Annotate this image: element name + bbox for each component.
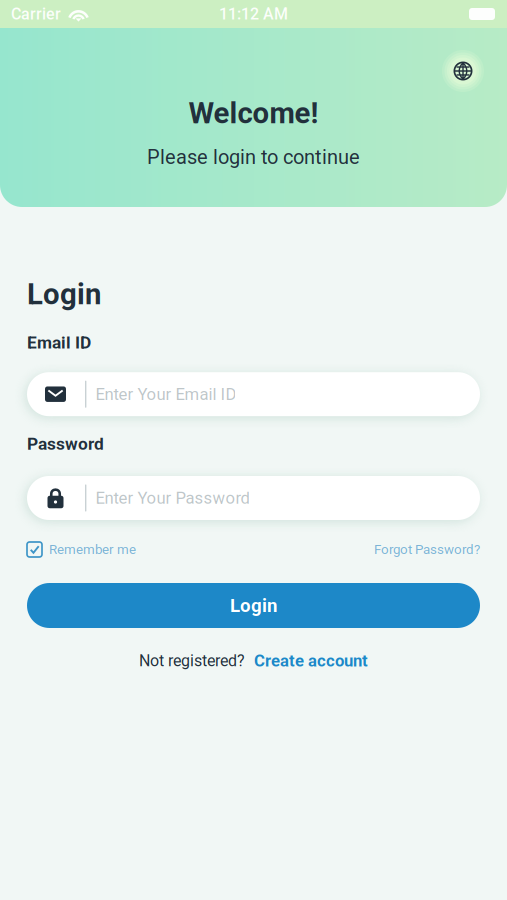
staticText: Create account: [254, 651, 368, 670]
staticText: Login: [230, 595, 277, 616]
staticText: Remember me: [49, 542, 136, 557]
button[interactable]: Remember me: [27, 540, 136, 558]
button[interactable]: Login: [27, 583, 480, 628]
staticText: Login: [27, 277, 101, 311]
staticText: 11:12 AM: [219, 5, 288, 23]
staticText: Please login to continue: [147, 145, 360, 169]
staticText: Not registered?: [139, 651, 245, 670]
staticText: Carrier: [11, 5, 61, 23]
staticText: Enter Your Email ID: [95, 384, 236, 404]
staticText: Email ID: [27, 332, 91, 353]
staticText: Enter Your Password: [95, 488, 249, 508]
staticText: Forgot Password?: [374, 542, 480, 557]
staticText: Welcome!: [188, 96, 318, 130]
button[interactable]: Forgot Password?: [374, 540, 480, 558]
button[interactable]: Create account: [254, 651, 368, 670]
button[interactable]: Change language: [441, 49, 485, 93]
staticText: Password: [27, 434, 104, 454]
